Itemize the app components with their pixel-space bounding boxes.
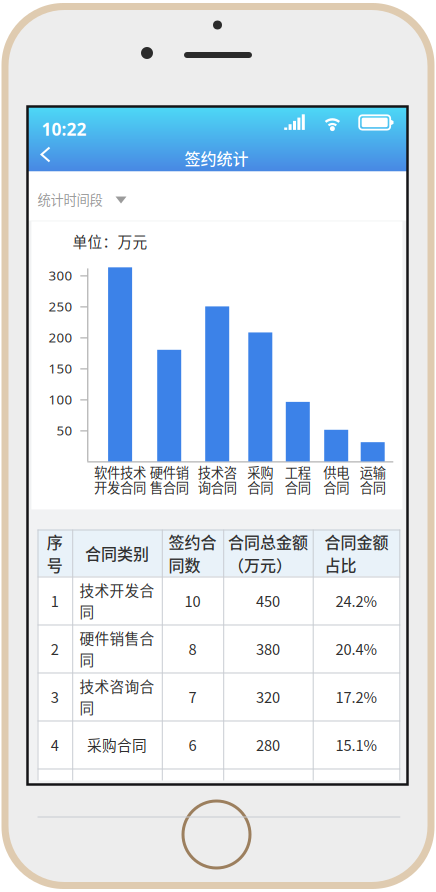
staticText: 300 — [48, 266, 72, 284]
staticText: 合同 — [360, 477, 386, 496]
staticText: 2 — [51, 638, 59, 659]
staticText: 150 — [48, 359, 72, 377]
staticText: 合同总金额 （万元） — [228, 530, 308, 576]
staticText: 200 — [48, 328, 72, 346]
staticText: 8 — [188, 638, 196, 659]
staticText: 技术咨询合 同 — [79, 675, 154, 718]
staticText: 450 — [256, 590, 280, 611]
button[interactable]: 统计时间段 — [27, 171, 407, 220]
staticText: 供电 — [323, 462, 349, 481]
staticText: 统计时间段 — [37, 189, 102, 209]
staticText: 采购 — [247, 462, 273, 481]
staticText: 250 — [48, 297, 72, 315]
staticText: 50 — [56, 421, 72, 439]
staticText: 320 — [256, 686, 280, 707]
staticText: 10:22 — [41, 117, 86, 140]
staticText: 6 — [188, 734, 196, 755]
staticText: 合同 — [323, 477, 349, 496]
staticText: 技术咨 — [198, 462, 237, 481]
staticText: 15.1% — [335, 734, 377, 755]
staticText: 合同 — [285, 477, 311, 496]
staticText: 280 — [256, 734, 280, 755]
staticText: 20.4% — [335, 638, 377, 659]
staticText: 10 — [184, 590, 200, 611]
staticText: 硬件销 — [150, 462, 189, 481]
staticText: 工程 — [285, 462, 311, 481]
staticText: 开发合同 — [94, 477, 146, 496]
staticText: 7 — [188, 686, 196, 707]
staticText: 24.2% — [335, 590, 377, 611]
staticText: 1 — [51, 590, 59, 611]
staticText: 询合同 — [198, 477, 237, 496]
staticText: 序 号 — [47, 530, 63, 576]
staticText: 售合同 — [150, 477, 189, 496]
staticText: 380 — [256, 638, 280, 659]
staticText: 采购合同 — [87, 734, 147, 755]
staticText: 签约统计 — [184, 146, 248, 170]
staticText: 软件技术 — [94, 462, 146, 481]
staticText: 单位：万元 — [72, 230, 147, 252]
staticText: 100 — [48, 390, 72, 408]
staticText: 签约合 同数 — [168, 530, 216, 576]
staticText: 17.2% — [335, 686, 377, 707]
staticText: 合同金额 占比 — [324, 530, 388, 576]
staticText: 合同 — [247, 477, 273, 496]
staticText: 技术开发合 同 — [79, 579, 154, 622]
staticText: 合同类别 — [85, 541, 149, 565]
staticText: 3 — [51, 686, 59, 707]
staticText: 硬件销售合 同 — [79, 627, 154, 670]
staticText: 4 — [51, 734, 59, 755]
button[interactable]: 返回 — [32, 139, 66, 169]
staticText: 运输 — [360, 462, 386, 481]
